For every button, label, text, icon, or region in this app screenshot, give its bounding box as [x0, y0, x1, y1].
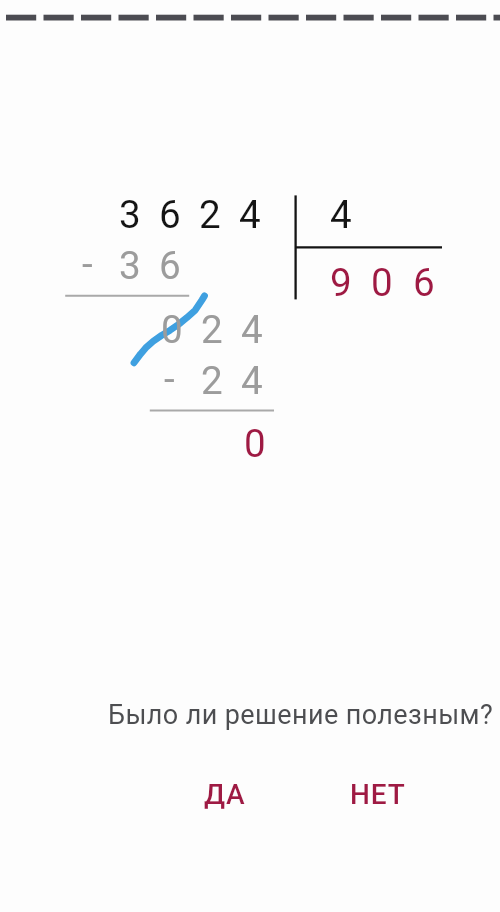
staticText: 4 — [241, 358, 263, 403]
staticText: 3 — [119, 192, 141, 237]
staticText: 6 — [159, 243, 181, 288]
staticText: - — [164, 356, 175, 401]
staticText: Было ли решение полезным? — [108, 699, 494, 731]
staticText: 0 — [161, 307, 183, 352]
staticText: 4 — [241, 307, 263, 352]
staticText: 2 — [199, 192, 221, 237]
staticText: 6 — [413, 260, 435, 305]
staticText: 4 — [330, 192, 352, 237]
staticText: 2 — [201, 307, 223, 352]
staticText: 6 — [159, 192, 181, 237]
staticText: НЕТ — [350, 778, 406, 811]
staticText: 0 — [371, 260, 393, 305]
staticText: - — [82, 241, 93, 286]
button[interactable]: ДА — [184, 772, 266, 818]
staticText: 2 — [201, 358, 223, 403]
staticText: 0 — [244, 421, 266, 466]
staticText: 4 — [239, 192, 261, 237]
staticText: 9 — [330, 260, 352, 305]
staticText: ДА — [204, 778, 246, 811]
button[interactable]: НЕТ — [330, 772, 426, 818]
staticText: 3 — [119, 243, 141, 288]
